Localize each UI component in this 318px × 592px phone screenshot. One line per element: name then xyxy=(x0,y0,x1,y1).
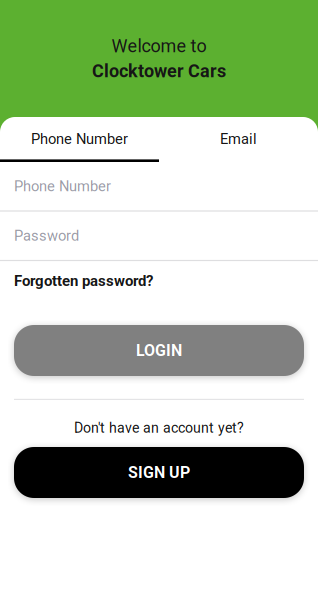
button[interactable]: Phone Number xyxy=(0,117,159,162)
button[interactable]: LOGIN xyxy=(14,325,304,376)
staticText: SIGN UP xyxy=(128,463,190,482)
staticText: LOGIN xyxy=(136,341,182,360)
button[interactable]: Password xyxy=(0,211,318,261)
button[interactable]: Phone Number xyxy=(0,162,318,211)
staticText: Welcome to xyxy=(111,35,206,57)
button[interactable]: Forgotten password? xyxy=(0,261,167,295)
staticText: Don't have an account yet? xyxy=(74,420,244,436)
staticText: Phone Number xyxy=(14,178,111,195)
staticText: Clocktower Cars xyxy=(92,60,226,82)
staticText: Password xyxy=(14,227,79,244)
staticText: Phone Number xyxy=(31,130,128,148)
button[interactable]: Email xyxy=(159,117,318,162)
button[interactable]: SIGN UP xyxy=(14,447,304,498)
staticText: Forgotten password? xyxy=(14,272,153,290)
staticText: Email xyxy=(220,130,257,148)
